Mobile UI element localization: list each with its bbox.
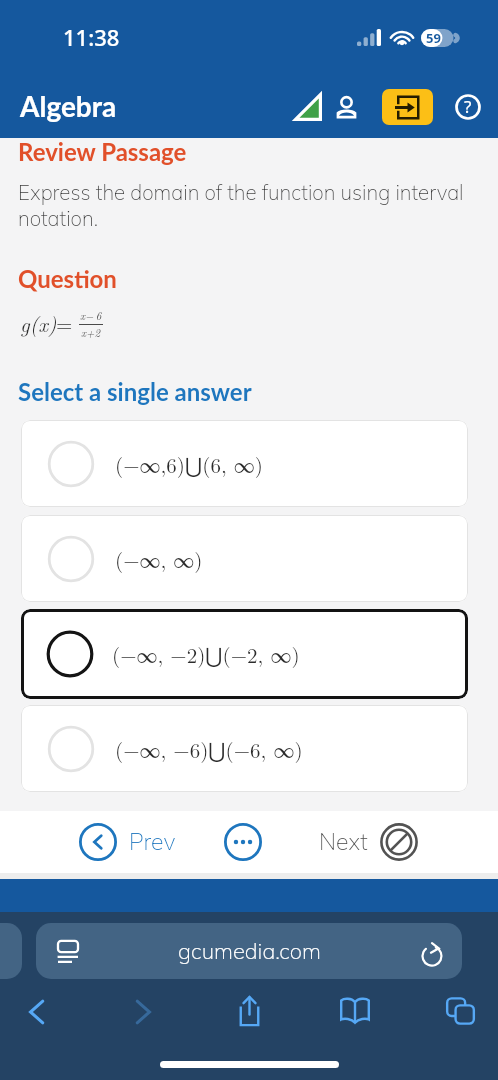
staticText: x− 6 xyxy=(80,308,102,324)
button[interactable]: Tabs xyxy=(437,988,483,1034)
staticText: x+2 xyxy=(81,325,101,341)
button[interactable]: Progress xyxy=(288,87,328,127)
button[interactable]: Bookmarks xyxy=(333,988,377,1032)
button[interactable]: (−∞, −6)⋃(−6, ∞) xyxy=(21,705,468,792)
button[interactable]: Forward xyxy=(121,989,166,1034)
button[interactable]: More options xyxy=(224,823,262,861)
button[interactable]: Account xyxy=(328,89,364,125)
button[interactable]: (−∞, −2)⋃(−2, ∞) xyxy=(21,609,468,699)
staticText: Select a single answer xyxy=(18,377,252,406)
button[interactable]: Prev xyxy=(79,823,176,861)
button[interactable]: Help xyxy=(448,87,488,127)
staticText: Review Passage xyxy=(18,137,187,166)
staticText: = xyxy=(56,308,73,338)
staticText: 59 xyxy=(426,29,441,47)
staticText: ? xyxy=(464,95,472,118)
button[interactable]: Back xyxy=(14,989,59,1034)
staticText: Algebra xyxy=(20,89,117,123)
button[interactable]: (−∞, ∞) xyxy=(21,515,468,602)
staticText: (−∞, −2)⋃(−2, ∞) xyxy=(112,639,300,669)
staticText: (−∞, −6)⋃(−6, ∞) xyxy=(115,734,303,764)
staticText: Prev xyxy=(129,827,176,856)
button[interactable]: Exit xyxy=(382,89,433,125)
button[interactable]: (−∞,6)⋃(6, ∞) xyxy=(21,420,468,507)
staticText: 11:38 xyxy=(63,22,120,52)
staticText: g(x) xyxy=(20,308,57,338)
staticText: Question xyxy=(18,264,117,293)
staticText: Express the domain of the function using… xyxy=(18,179,464,231)
button[interactable]: Next xyxy=(319,823,418,861)
staticText: (−∞,6)⋃(6, ∞) xyxy=(115,449,263,479)
button[interactable]: Share xyxy=(226,988,272,1034)
staticText: gcumedia.com xyxy=(178,937,321,965)
staticText: (−∞, ∞) xyxy=(115,544,203,574)
staticText: Next xyxy=(319,827,368,856)
button[interactable]: gcumedia.com xyxy=(36,923,462,979)
